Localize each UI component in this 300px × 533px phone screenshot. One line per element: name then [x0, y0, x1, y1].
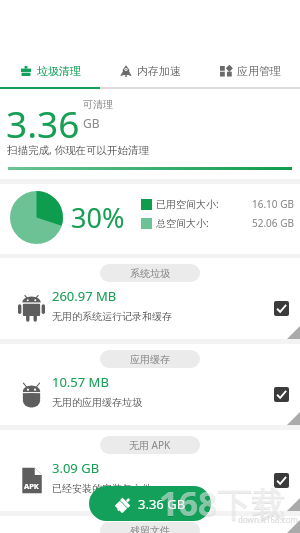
staticText: 3.36 [6, 98, 80, 148]
button[interactable]: 系统垃圾 [100, 264, 200, 282]
staticText: 3.09 GB [52, 459, 100, 477]
staticText: 10.57 MB [52, 373, 109, 391]
button[interactable]: Selected [274, 301, 289, 316]
staticText: 扫描完成, 你现在可以开始清理 [7, 143, 150, 157]
staticText: 应用缓存 [130, 353, 170, 366]
staticText: 168下载 [159, 481, 286, 527]
staticText: 已经安装的安装包文件 [52, 482, 152, 495]
button[interactable]: 内存加速 [100, 55, 200, 87]
staticText: 总空间大小: [156, 216, 209, 230]
button[interactable]: 260.97 MB [0, 282, 300, 334]
staticText: APK [24, 481, 39, 491]
staticText: 52.06 GB [252, 216, 294, 230]
staticText: 垃圾清理 [37, 64, 81, 78]
button[interactable]: Selected [274, 473, 289, 488]
button[interactable]: APK [0, 454, 300, 506]
button[interactable]: 10.57 MB [0, 368, 300, 420]
staticText: 无用的应用缓存垃圾 [52, 396, 142, 409]
staticText: 残留文件 [130, 524, 170, 533]
staticText: 30% [71, 199, 125, 236]
staticText: 3.36 GB [138, 495, 186, 513]
staticText: 可清理 [83, 98, 113, 111]
staticText: 260.97 MB [52, 287, 117, 305]
button[interactable]: Selected [274, 387, 289, 402]
staticText: GB [83, 115, 100, 131]
button[interactable]: 无用 APK [100, 436, 200, 454]
staticText: 应用管理 [237, 64, 281, 78]
staticText: 无用的系统运行记录和缓存 [52, 310, 172, 323]
button[interactable]: 残留文件 [100, 522, 200, 533]
staticText: 系统垃圾 [130, 267, 170, 280]
staticText: down.it168.com [238, 514, 298, 525]
staticText: 已用空间大小: [156, 197, 219, 211]
staticText: 内存加速 [137, 64, 181, 78]
button[interactable]: 应用管理 [200, 55, 300, 87]
staticText: 16.10 GB [252, 197, 294, 211]
staticText: 无用 APK [129, 438, 171, 452]
button[interactable]: 3.36 GB [89, 486, 211, 521]
button[interactable]: 垃圾清理 [0, 55, 100, 87]
staticText: 168下载 [159, 480, 286, 526]
button[interactable]: 应用缓存 [100, 350, 200, 368]
